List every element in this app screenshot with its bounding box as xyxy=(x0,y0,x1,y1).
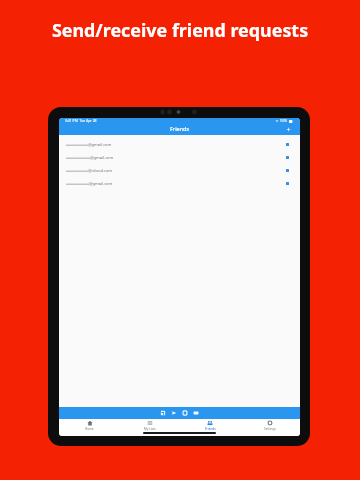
button[interactable]: @gmail.com xyxy=(59,138,300,151)
staticText: Home xyxy=(85,427,94,431)
staticText: Settings xyxy=(264,427,276,431)
button[interactable]: @gmail.com xyxy=(59,151,300,164)
staticText: Friends xyxy=(205,427,216,431)
staticText: @gmail.com xyxy=(88,142,112,147)
staticText: @gmail.com xyxy=(90,155,114,160)
button[interactable]: Stop xyxy=(182,410,188,416)
staticText: @icloud.com xyxy=(88,168,113,173)
staticText: My Lists xyxy=(144,427,156,431)
button[interactable]: Settings xyxy=(240,419,300,432)
button[interactable]: Send xyxy=(171,410,177,416)
button[interactable]: Camera xyxy=(193,410,199,416)
button[interactable]: My Lists xyxy=(120,419,180,432)
staticText: Friends xyxy=(170,125,190,132)
button[interactable]: @gmail.com xyxy=(59,177,300,190)
staticText: 100% xyxy=(280,119,288,123)
button[interactable]: Photos xyxy=(160,410,166,416)
staticText: @gmail.com xyxy=(89,181,113,186)
button[interactable]: Add friend xyxy=(285,126,292,133)
staticText: 9:41 PM Tue Apr 28 xyxy=(65,118,97,123)
button[interactable]: Home xyxy=(59,419,120,432)
button[interactable]: Friends xyxy=(180,419,240,432)
staticText: Send/receive friend requests xyxy=(0,18,360,42)
button[interactable]: @icloud.com xyxy=(59,164,300,177)
